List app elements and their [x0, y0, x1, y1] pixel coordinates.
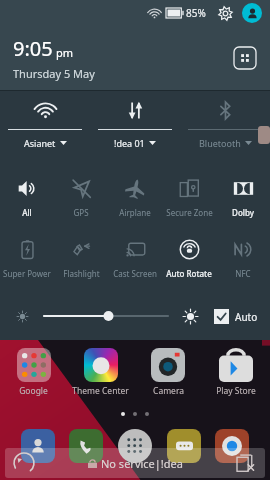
button[interactable]: Lower brightness [10, 304, 34, 328]
staticText: Camera [153, 385, 184, 397]
staticText: Flashlight [63, 268, 100, 279]
button[interactable]: App [215, 429, 249, 463]
button[interactable]: Auto Rotate [162, 228, 216, 289]
staticText: Airplane [119, 207, 151, 218]
staticText: NFC [235, 268, 251, 279]
button[interactable]: Refresh [13, 452, 35, 474]
button[interactable]: Dolby [216, 167, 270, 228]
staticText: Dolby [232, 207, 254, 218]
button[interactable]: All apps [118, 429, 152, 463]
button[interactable]: NFC [216, 228, 270, 289]
button[interactable]: Theme Center [67, 348, 134, 397]
button[interactable]: All [0, 167, 54, 228]
staticText: Thursday 5 May [13, 66, 95, 81]
button[interactable]: App [69, 429, 103, 463]
staticText: Super Power [3, 268, 51, 279]
staticText: Google [19, 385, 48, 397]
staticText: pm [56, 45, 74, 60]
staticText: Auto [235, 310, 258, 324]
button[interactable]: Clear all notifications [235, 452, 257, 474]
staticText: All [22, 207, 32, 218]
staticText: Theme Center [72, 385, 129, 397]
staticText: 9:05 [13, 35, 53, 62]
button[interactable]: Brightness slider [44, 304, 168, 328]
button[interactable]: GPS [54, 167, 108, 228]
button[interactable]: Secure Zone [162, 167, 216, 228]
button[interactable]: Asianet [0, 91, 90, 163]
staticText: Auto Rotate [166, 268, 212, 279]
button[interactable]: Settings [215, 3, 235, 23]
staticText: GPS [73, 207, 89, 218]
button[interactable]: Bluetooth [180, 91, 270, 163]
button[interactable]: Cast Screen [108, 228, 162, 289]
staticText: No service|!dea [101, 456, 183, 471]
button[interactable]: Edit quick settings [233, 46, 257, 70]
button[interactable]: Auto [212, 307, 260, 326]
button[interactable]: Super Power [0, 228, 54, 289]
button[interactable]: Camera [134, 348, 202, 397]
button[interactable]: User profile [242, 3, 262, 23]
button[interactable]: App [167, 429, 201, 463]
button[interactable]: Raise brightness [178, 304, 202, 328]
button[interactable]: App [21, 429, 55, 463]
staticText: !dea 01 [114, 137, 145, 149]
button[interactable]: Flashlight [54, 228, 108, 289]
button[interactable]: !dea 01 [90, 91, 180, 163]
staticText: Cast Screen [113, 268, 157, 279]
button[interactable]: Google [0, 348, 67, 397]
staticText: Secure Zone [166, 207, 213, 218]
button[interactable]: Airplane [108, 167, 162, 228]
staticText: 85% [186, 6, 206, 20]
staticText: Bluetooth [199, 137, 241, 149]
button[interactable]: Play Store [202, 348, 270, 397]
staticText: Asianet [24, 137, 56, 149]
staticText: Play Store [216, 385, 256, 397]
